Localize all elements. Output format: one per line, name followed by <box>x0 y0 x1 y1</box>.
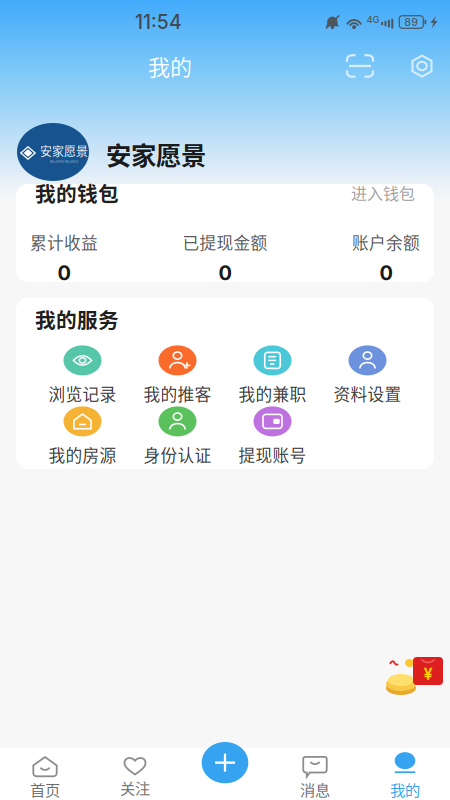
button[interactable]: 我的房源 <box>35 406 130 467</box>
button[interactable]: 浏览记录 <box>35 345 130 406</box>
button[interactable]: 我的兼职 <box>225 345 320 406</box>
staticText: 我的 <box>148 50 192 82</box>
staticText: 0 <box>218 261 231 285</box>
staticText: 首页 <box>30 778 60 800</box>
button[interactable]: 我的推客 <box>130 345 225 406</box>
button[interactable]: 红包 <box>368 652 430 686</box>
staticText: 我的服务 <box>35 304 119 334</box>
button[interactable]: 头像 <box>17 123 89 181</box>
button[interactable]: 我的 <box>360 748 450 800</box>
staticText: 我的房源 <box>48 442 116 466</box>
staticText: 身份认证 <box>143 442 211 466</box>
staticText: 安家愿景 <box>106 136 206 172</box>
staticText: 资料设置 <box>333 381 401 405</box>
staticText: 提现账号 <box>238 442 306 466</box>
staticText: 安家愿景 <box>40 142 88 160</box>
staticText: 0 <box>379 261 392 285</box>
staticText: 累计收益 <box>30 230 98 254</box>
staticText: 我的钱包 <box>35 178 119 208</box>
staticText: 4G <box>367 14 380 25</box>
button[interactable]: 首页 <box>0 748 90 800</box>
staticText: 账户余额 <box>352 230 420 254</box>
staticText: 已提现金额 <box>182 230 267 254</box>
staticText: 我的推客 <box>143 381 211 405</box>
staticText: 0 <box>57 261 70 285</box>
button[interactable]: 资料设置 <box>320 345 415 406</box>
staticText: 我的兼职 <box>238 381 306 405</box>
button[interactable]: 提现账号 <box>225 406 320 467</box>
staticText: 进入钱包 <box>351 181 415 204</box>
staticText: 关注 <box>120 776 150 799</box>
staticText: 消息 <box>300 778 330 800</box>
staticText: 我的 <box>390 778 420 800</box>
staticText: ANJIAYUANJING <box>49 160 78 164</box>
button[interactable]: 关注 <box>90 748 180 800</box>
button[interactable]: 扫一扫 <box>340 48 380 84</box>
button[interactable]: 设置 <box>404 48 440 83</box>
button[interactable]: 身份认证 <box>130 406 225 467</box>
staticText: ¥ <box>423 664 432 684</box>
staticText: 89 <box>404 15 418 28</box>
button[interactable]: 消息 <box>270 748 360 800</box>
button[interactable]: 进入钱包 <box>351 181 415 204</box>
staticText: 11:54 <box>135 10 182 34</box>
staticText: 浏览记录 <box>48 381 116 405</box>
